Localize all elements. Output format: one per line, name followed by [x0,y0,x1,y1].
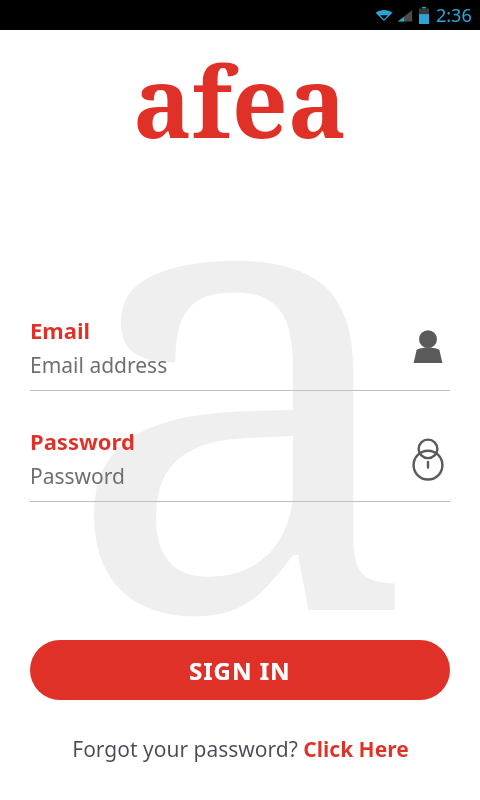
staticText: 2:36 [436,3,472,28]
staticText: afea [133,33,347,166]
staticText: Email [30,315,91,345]
other: Password field [406,437,450,481]
button[interactable]: Password [30,426,450,502]
staticText: Forgot your password? Click Here [72,735,409,764]
button[interactable]: SIGN IN [30,640,450,700]
staticText: SIGN IN [189,654,291,687]
other: Email field [406,326,450,370]
staticText: Password [30,462,125,491]
staticText: Email address [30,351,168,380]
staticText: a [62,0,423,696]
button[interactable]: Email [30,315,450,391]
staticText: Password [30,426,135,456]
button[interactable]: Forgot your password? Click Here [0,735,480,764]
